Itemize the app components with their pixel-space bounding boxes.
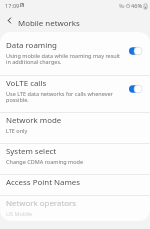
button[interactable]: System select [0, 143, 150, 174]
staticText: ‰ [119, 3, 125, 9]
staticText: Use LTE data networks for calls whenever… [6, 90, 124, 104]
staticText: Access Point Names [6, 177, 81, 188]
button[interactable]: Toggle Data roaming [129, 44, 143, 58]
staticText: Network operators [6, 198, 77, 209]
staticText: 17:09 [5, 2, 20, 10]
staticText: Change CDMA roaming mode [6, 158, 84, 165]
staticText: VoLTE calls [6, 78, 47, 89]
button[interactable]: Access Point Names [0, 174, 150, 195]
staticText: Using mobile data while roaming may resu… [6, 52, 124, 66]
button[interactable]: VoLTE calls [0, 75, 150, 112]
button[interactable]: Navigate up [1, 12, 18, 29]
staticText: LTE only [6, 127, 28, 134]
button[interactable]: Toggle VoLTE calls [129, 82, 143, 96]
staticText: System select [6, 146, 57, 157]
staticText: US Mobile [6, 210, 33, 217]
staticText: Network mode [6, 115, 62, 126]
button[interactable]: Data roaming [0, 37, 150, 75]
staticText: Mobile networks [18, 18, 80, 29]
staticText: 46% [131, 2, 143, 10]
button[interactable]: Network operators [0, 195, 150, 226]
staticText: Data roaming [6, 40, 57, 51]
button[interactable]: Network mode [0, 112, 150, 143]
